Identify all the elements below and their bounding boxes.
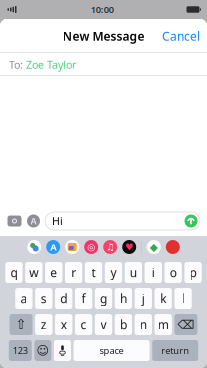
staticText: l [182, 290, 185, 306]
button[interactable]: a [15, 288, 32, 309]
staticText: To: [9, 57, 23, 72]
staticText: q [10, 264, 17, 280]
staticText: p [190, 264, 197, 280]
staticText: ♫ [106, 242, 114, 252]
button[interactable]: r [65, 262, 82, 283]
staticText: space [100, 344, 124, 357]
button[interactable]: Apple Music [122, 240, 136, 254]
staticText: u [130, 264, 137, 280]
staticText: e [50, 264, 57, 280]
staticText: ⌫ [177, 318, 194, 331]
button[interactable]: x [55, 314, 72, 335]
button[interactable]: Dictate [54, 340, 71, 361]
staticText: A [30, 215, 36, 227]
button[interactable]: Music [103, 240, 117, 254]
staticText: return [161, 344, 189, 357]
staticText: Cancel [162, 28, 200, 44]
button[interactable]: m [155, 314, 172, 335]
button[interactable]: Shift [9, 314, 32, 335]
staticText: s [41, 290, 47, 306]
staticText: g [100, 290, 107, 306]
staticText: x [61, 316, 67, 332]
button[interactable]: n [135, 314, 152, 335]
staticText: t [91, 264, 95, 280]
button[interactable]: k [155, 288, 172, 309]
staticText: o [170, 264, 177, 280]
button[interactable]: o [164, 262, 182, 283]
button[interactable]: Maps [147, 240, 161, 254]
button[interactable]: Store [65, 240, 79, 254]
button[interactable]: 123 [9, 340, 32, 361]
button[interactable]: q [5, 262, 23, 283]
button[interactable]: Emoji [34, 340, 51, 361]
staticText: i [152, 264, 155, 280]
staticText: y [110, 264, 116, 280]
button[interactable]: w [25, 262, 42, 283]
staticText: 10:00 [91, 3, 114, 16]
staticText: New Message [62, 28, 144, 44]
button[interactable]: f [75, 288, 92, 309]
staticText: d [60, 290, 67, 306]
button[interactable]: i [145, 262, 162, 283]
button[interactable]: Image search [84, 240, 98, 254]
staticText: a [20, 290, 27, 306]
button[interactable]: space [74, 340, 150, 361]
staticText: m [158, 316, 169, 332]
staticText: Zoe Taylor [26, 57, 76, 72]
staticText: w [29, 264, 38, 280]
button[interactable]: c [75, 314, 92, 335]
staticText: A [50, 241, 56, 253]
staticText: ◎ [87, 242, 95, 252]
staticText: ◆ [150, 241, 158, 253]
staticText: 123 [13, 344, 28, 357]
button[interactable]: b [115, 314, 132, 335]
staticText: Hi [52, 214, 63, 228]
staticText: z [41, 316, 47, 332]
staticText: ☺ [36, 344, 49, 357]
button[interactable]: z [35, 314, 52, 335]
staticText: ♥ [125, 242, 133, 252]
button[interactable]: Camera [7, 214, 22, 228]
staticText: h [120, 290, 127, 306]
button[interactable]: y [105, 262, 122, 283]
button[interactable]: p [184, 262, 202, 283]
button[interactable]: e [45, 262, 62, 283]
button[interactable]: App Store [46, 240, 60, 254]
staticText: c [81, 316, 87, 332]
staticText: b [120, 316, 127, 332]
staticText: k [160, 290, 166, 306]
button[interactable]: Photos [27, 240, 41, 254]
button[interactable]: Apps [27, 214, 40, 227]
button[interactable]: v [95, 314, 112, 335]
button[interactable]: d [55, 288, 72, 309]
button[interactable]: h [115, 288, 132, 309]
button[interactable]: t [85, 262, 102, 283]
button[interactable]: Cancel [155, 23, 207, 49]
button[interactable]: g [95, 288, 112, 309]
staticText: ⇧ [15, 317, 26, 332]
button[interactable]: s [35, 288, 52, 309]
staticText: j [142, 290, 145, 306]
button[interactable]: l [174, 288, 192, 309]
button[interactable]: App [166, 240, 180, 254]
button[interactable]: Delete [174, 314, 197, 335]
button[interactable]: Send [184, 214, 197, 227]
button[interactable]: u [125, 262, 142, 283]
staticText: f [82, 290, 86, 306]
staticText: v [100, 316, 106, 332]
button[interactable]: j [135, 288, 152, 309]
button[interactable]: return [152, 340, 198, 361]
staticText: r [71, 264, 76, 280]
staticText: n [140, 316, 147, 332]
button[interactable]: To: [0, 53, 207, 76]
